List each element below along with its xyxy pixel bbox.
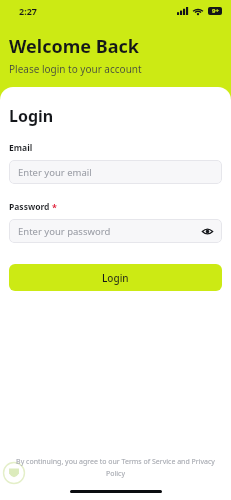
- button[interactable]: Enter your email: [9, 160, 222, 184]
- staticText: Password: [9, 201, 50, 213]
- staticText: Please login to your account: [9, 62, 142, 76]
- button[interactable]: Login: [9, 264, 222, 291]
- button[interactable]: Show password: [199, 223, 215, 239]
- staticText: Welcome Back: [9, 34, 139, 59]
- staticText: *: [52, 201, 57, 213]
- button[interactable]: Enter your password: [9, 219, 222, 243]
- staticText: 2:27: [19, 5, 37, 17]
- staticText: Email: [9, 142, 33, 154]
- staticText: Login: [9, 105, 54, 127]
- staticText: Login: [102, 271, 129, 285]
- staticText: 9+: [212, 7, 219, 15]
- staticText: Enter your email: [18, 166, 92, 179]
- staticText: By continuing, you agree to our Terms of…: [16, 457, 215, 478]
- staticText: Enter your password: [18, 225, 111, 238]
